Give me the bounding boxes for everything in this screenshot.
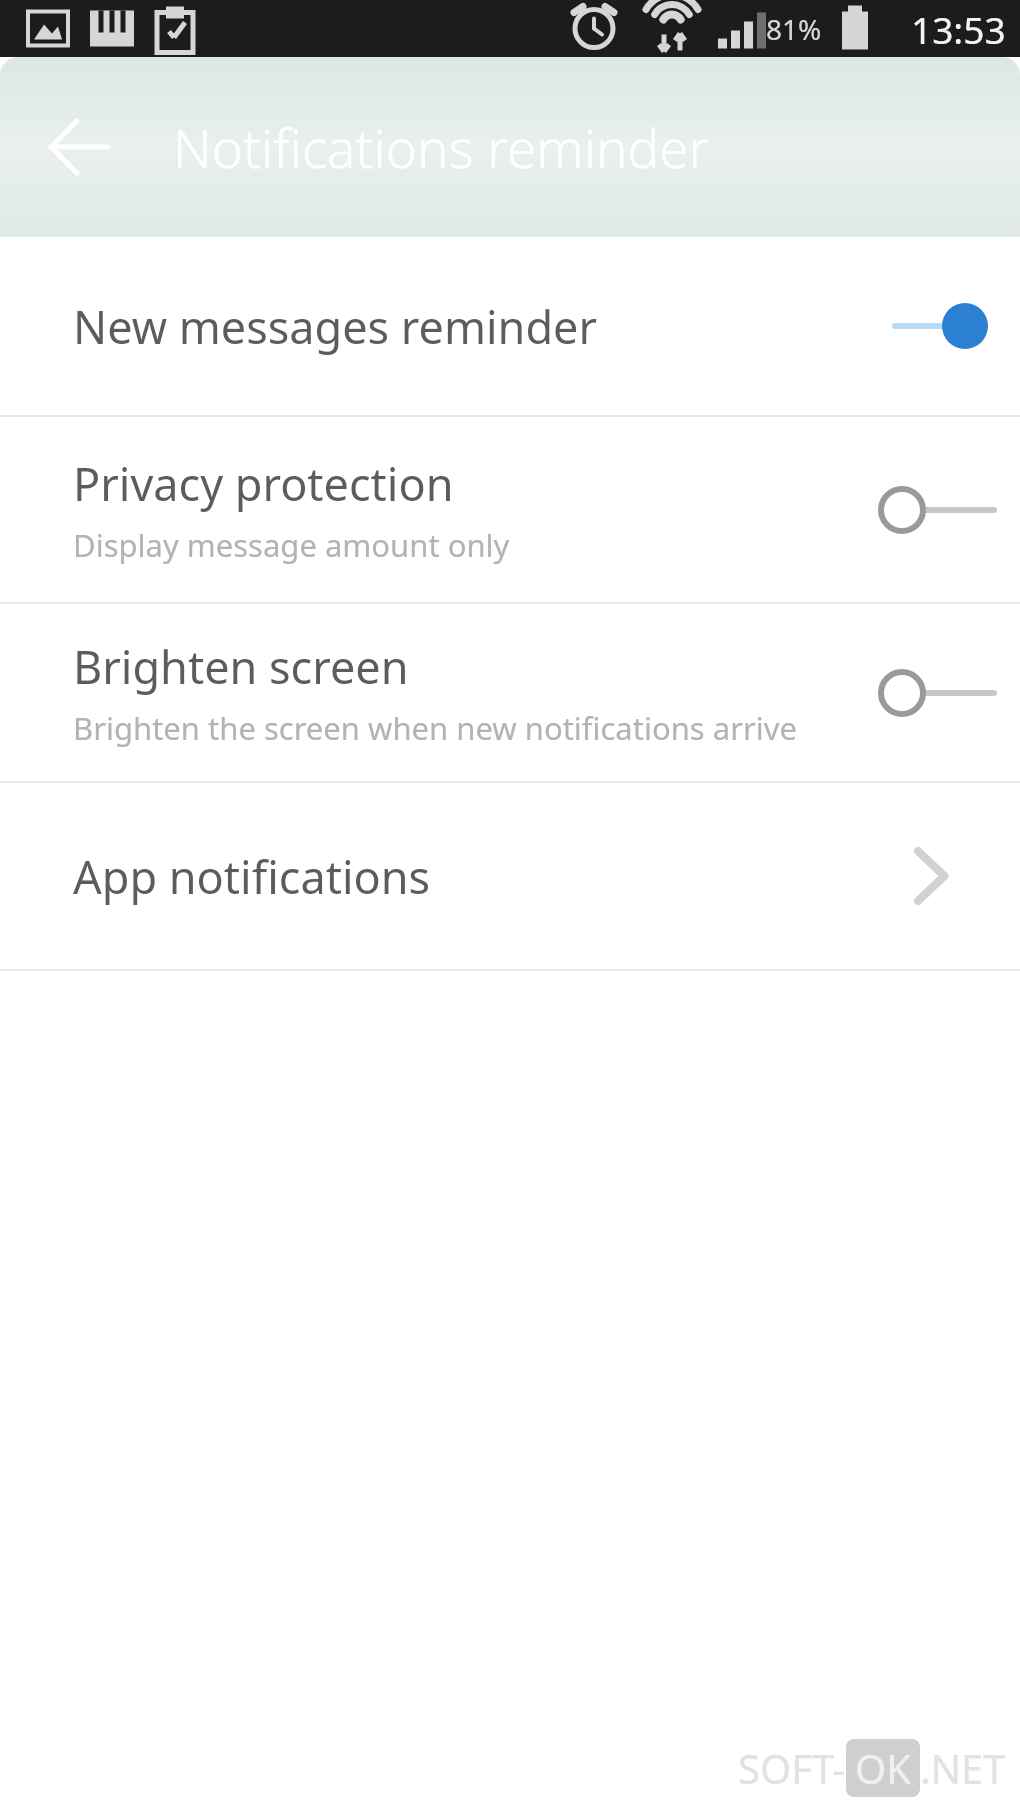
button[interactable]: Toggle, off <box>850 645 1000 741</box>
staticText: .NET <box>920 1741 1006 1795</box>
staticText: Brighten the screen when new notificatio… <box>73 707 798 749</box>
staticText: Privacy protection <box>73 453 454 514</box>
staticText: 13:53 <box>911 4 1006 54</box>
staticText: Display message amount only <box>73 524 510 566</box>
button[interactable]: App notifications <box>877 828 973 924</box>
staticText: App notifications <box>73 846 431 907</box>
staticText: OK <box>855 1741 911 1795</box>
staticText: New messages reminder <box>73 296 598 357</box>
staticText: SOFT- <box>738 1741 846 1795</box>
button[interactable]: Brighten screen <box>0 604 1020 781</box>
button[interactable]: Back <box>36 104 122 190</box>
button[interactable]: New messages reminder toggle, on <box>850 278 1000 374</box>
button[interactable]: New messages reminder <box>0 237 1020 415</box>
button[interactable]: Privacy protection <box>0 417 1020 602</box>
staticText: Brighten screen <box>73 636 409 697</box>
button[interactable]: App notifications <box>0 783 1020 969</box>
staticText: 81% <box>766 10 822 48</box>
staticText: Notifications reminder <box>173 111 710 183</box>
button[interactable]: Toggle, off <box>850 462 1000 558</box>
